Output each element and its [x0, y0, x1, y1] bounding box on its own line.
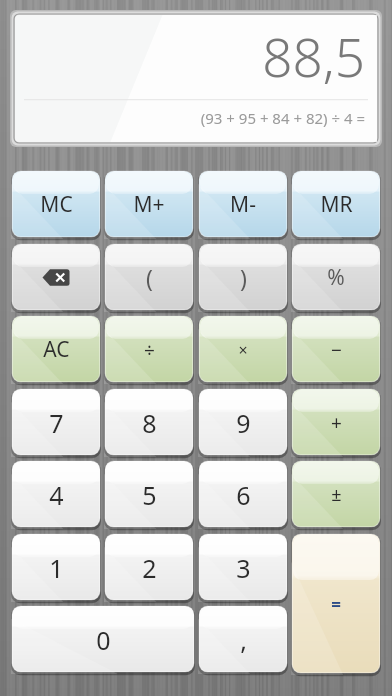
- button[interactable]: 4: [11, 460, 101, 529]
- staticText: 8: [142, 406, 157, 440]
- button[interactable]: ×: [198, 315, 288, 384]
- staticText: −: [331, 337, 342, 363]
- staticText: MR: [320, 190, 353, 219]
- staticText: AC: [43, 335, 70, 364]
- staticText: ±: [331, 482, 342, 507]
- staticText: 0: [96, 623, 111, 657]
- staticText: ÷: [144, 337, 155, 363]
- button[interactable]: 9: [198, 388, 288, 457]
- button[interactable]: 0: [11, 605, 195, 674]
- staticText: 6: [236, 478, 251, 512]
- button[interactable]: ±: [291, 460, 381, 529]
- button[interactable]: 7: [11, 388, 101, 457]
- staticText: (93 + 95 + 84 + 82) ÷ 4 =: [200, 108, 365, 128]
- button[interactable]: 8: [104, 388, 194, 457]
- staticText: ,: [240, 623, 247, 657]
- button[interactable]: −: [291, 315, 381, 384]
- button[interactable]: MC: [11, 170, 101, 239]
- button[interactable]: +: [291, 388, 381, 457]
- button[interactable]: 1: [11, 533, 101, 602]
- button[interactable]: ÷: [104, 315, 194, 384]
- staticText: 88,5: [262, 20, 365, 92]
- button[interactable]: (: [104, 243, 194, 312]
- button[interactable]: 6: [198, 460, 288, 529]
- staticText: 1: [49, 551, 64, 585]
- button[interactable]: ): [198, 243, 288, 312]
- button[interactable]: =: [291, 533, 381, 675]
- button[interactable]: 5: [104, 460, 194, 529]
- staticText: 4: [49, 478, 64, 512]
- button[interactable]: ,: [198, 605, 288, 674]
- staticText: 9: [236, 406, 251, 440]
- button[interactable]: M+: [104, 170, 194, 239]
- button[interactable]: MR: [291, 170, 381, 239]
- staticText: MC: [40, 190, 73, 219]
- button[interactable]: %: [291, 243, 381, 312]
- staticText: ): [240, 262, 247, 293]
- staticText: 5: [142, 478, 157, 512]
- staticText: M+: [133, 190, 165, 219]
- staticText: M-: [230, 190, 256, 219]
- staticText: 3: [236, 551, 251, 585]
- staticText: +: [331, 410, 342, 436]
- button[interactable]: 2: [104, 533, 194, 602]
- button[interactable]: 3: [198, 533, 288, 602]
- staticText: =: [331, 593, 341, 616]
- staticText: %: [327, 263, 345, 292]
- button[interactable]: Backspace: [11, 243, 101, 312]
- staticText: (: [146, 262, 153, 293]
- staticText: ×: [238, 339, 248, 361]
- button[interactable]: M-: [198, 170, 288, 239]
- button[interactable]: AC: [11, 315, 101, 384]
- staticText: 2: [142, 551, 157, 585]
- staticText: 7: [49, 406, 64, 440]
